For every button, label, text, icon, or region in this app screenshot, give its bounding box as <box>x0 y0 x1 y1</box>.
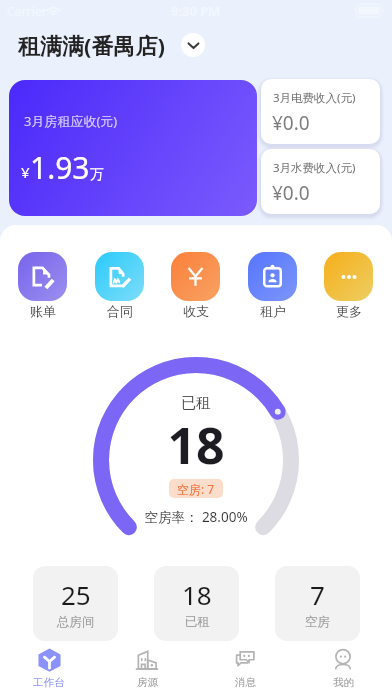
staticText: ¥0.0 <box>272 180 310 206</box>
button[interactable]: 工作台 <box>0 641 98 696</box>
button[interactable]: 消息 <box>196 641 294 696</box>
staticText: 1.93 <box>30 147 90 188</box>
staticText: 25 <box>61 577 91 612</box>
button[interactable]: 账单 <box>18 252 67 319</box>
staticText: ¥ <box>21 162 30 182</box>
button[interactable]: 更多 <box>324 252 373 319</box>
staticText: 已租 <box>185 614 210 630</box>
staticText: 空房率： 28.00% <box>0 508 392 526</box>
staticText: 房源 <box>137 676 158 689</box>
button[interactable]: 租户 <box>248 252 297 319</box>
staticText: 3月水费收入(元) <box>273 160 356 176</box>
button[interactable]: 3月水费收入(元) <box>261 149 380 214</box>
button[interactable]: Switch store <box>181 33 205 57</box>
staticText: 消息 <box>235 676 256 689</box>
staticText: 万 <box>90 166 104 184</box>
staticText: 更多 <box>336 303 362 319</box>
button[interactable]: 3月房租应收(元) <box>9 80 257 216</box>
button[interactable]: 收支 <box>171 252 220 319</box>
staticText: 租户 <box>260 303 286 319</box>
button[interactable]: 25 <box>33 566 118 641</box>
staticText: 空房 <box>305 614 330 630</box>
button[interactable]: 房源 <box>98 641 196 696</box>
staticText: 7 <box>310 577 325 612</box>
staticText: 收支 <box>183 303 209 319</box>
staticText: 已租 <box>0 394 392 413</box>
staticText: 账单 <box>30 303 56 319</box>
button[interactable]: 7 <box>275 566 360 641</box>
staticText: 空房: 7 <box>177 481 215 497</box>
staticText: 3月电费收入(元) <box>273 90 356 106</box>
staticText: 工作台 <box>33 676 65 689</box>
button[interactable]: 18 <box>154 566 239 641</box>
button[interactable]: 我的 <box>294 641 392 696</box>
button[interactable]: 3月电费收入(元) <box>261 79 380 144</box>
button[interactable]: 合同 <box>95 252 144 319</box>
staticText: 18 <box>182 577 212 612</box>
staticText: 3月房租应收(元) <box>24 112 118 130</box>
staticText: 总房间 <box>57 614 95 630</box>
staticText: ¥0.0 <box>272 110 310 136</box>
staticText: 租满满(番禺店) <box>18 30 165 60</box>
staticText: 18 <box>0 411 392 479</box>
staticText: 我的 <box>333 676 354 689</box>
staticText: 合同 <box>107 303 133 319</box>
